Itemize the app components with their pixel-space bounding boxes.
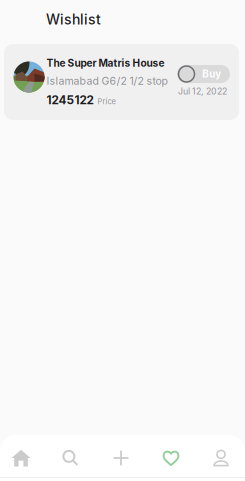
staticText: The Super Matris House (46, 57, 164, 69)
button[interactable]: Search (48, 438, 92, 478)
staticText: 1245122 (46, 93, 93, 107)
staticText: Islamabad G6/2 1/2 stop (46, 75, 167, 87)
staticText: Wishlist (46, 11, 101, 28)
staticText: Buy (202, 68, 221, 80)
button[interactable]: Home (0, 438, 43, 478)
button[interactable]: Profile (199, 438, 243, 478)
button[interactable]: Buy (177, 65, 230, 83)
button[interactable]: Add listing (99, 438, 143, 478)
button[interactable]: Wishlist (149, 438, 193, 478)
staticText: Jul 12, 2022 (178, 86, 227, 97)
staticText: Price (97, 97, 115, 106)
